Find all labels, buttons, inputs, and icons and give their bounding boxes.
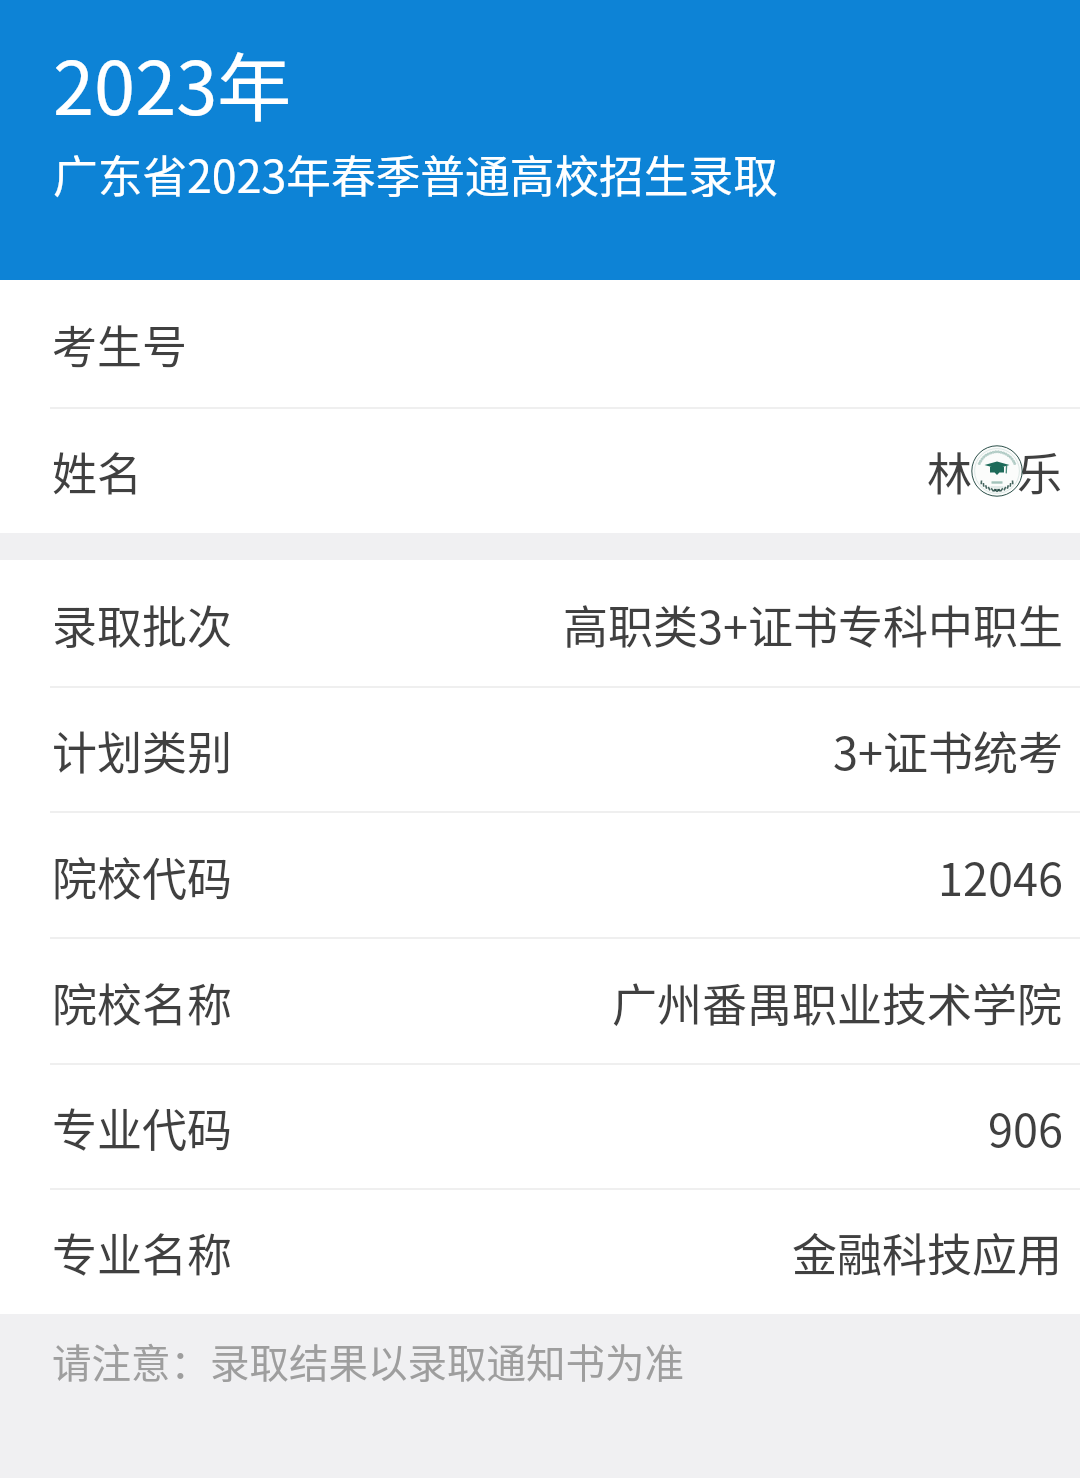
staticText: 院校代码 <box>52 844 233 909</box>
other: University seal <box>929 431 1061 511</box>
button[interactable]: 录取批次 <box>0 560 1080 688</box>
button[interactable]: 院校名称 <box>0 939 1080 1065</box>
staticText: 906 <box>988 1095 1063 1160</box>
staticText: 专业代码 <box>52 1095 233 1160</box>
staticText: 林 乐 <box>927 439 1063 504</box>
staticText: 录取批次 <box>52 592 233 657</box>
staticText: 考生号 <box>52 312 188 377</box>
button[interactable]: 姓名 <box>0 409 1080 533</box>
staticText: 计划类别 <box>52 718 233 783</box>
staticText: 2023年 <box>53 29 292 136</box>
button[interactable]: 计划类别 <box>0 688 1080 813</box>
button[interactable]: 考生号 <box>0 280 1080 409</box>
button[interactable]: 专业名称 <box>0 1190 1080 1314</box>
button[interactable]: 专业代码 <box>0 1065 1080 1190</box>
staticText: 广州番禺职业技术学院 <box>612 970 1063 1035</box>
staticText: 金融科技应用 <box>792 1220 1063 1285</box>
staticText: 3+证书统考 <box>833 718 1063 783</box>
button[interactable]: 院校代码 <box>0 813 1080 939</box>
staticText: 专业名称 <box>52 1220 233 1285</box>
staticText: 姓名 <box>52 439 143 504</box>
staticText: 高职类3+证书专科中职生 <box>563 592 1063 657</box>
staticText: 12046 <box>938 844 1063 909</box>
staticText: 院校名称 <box>52 970 233 1035</box>
staticText: 请注意：录取结果以录取通知书为准 <box>52 1332 684 1389</box>
staticText: 广东省2023年春季普通高校招生录取 <box>53 141 778 206</box>
